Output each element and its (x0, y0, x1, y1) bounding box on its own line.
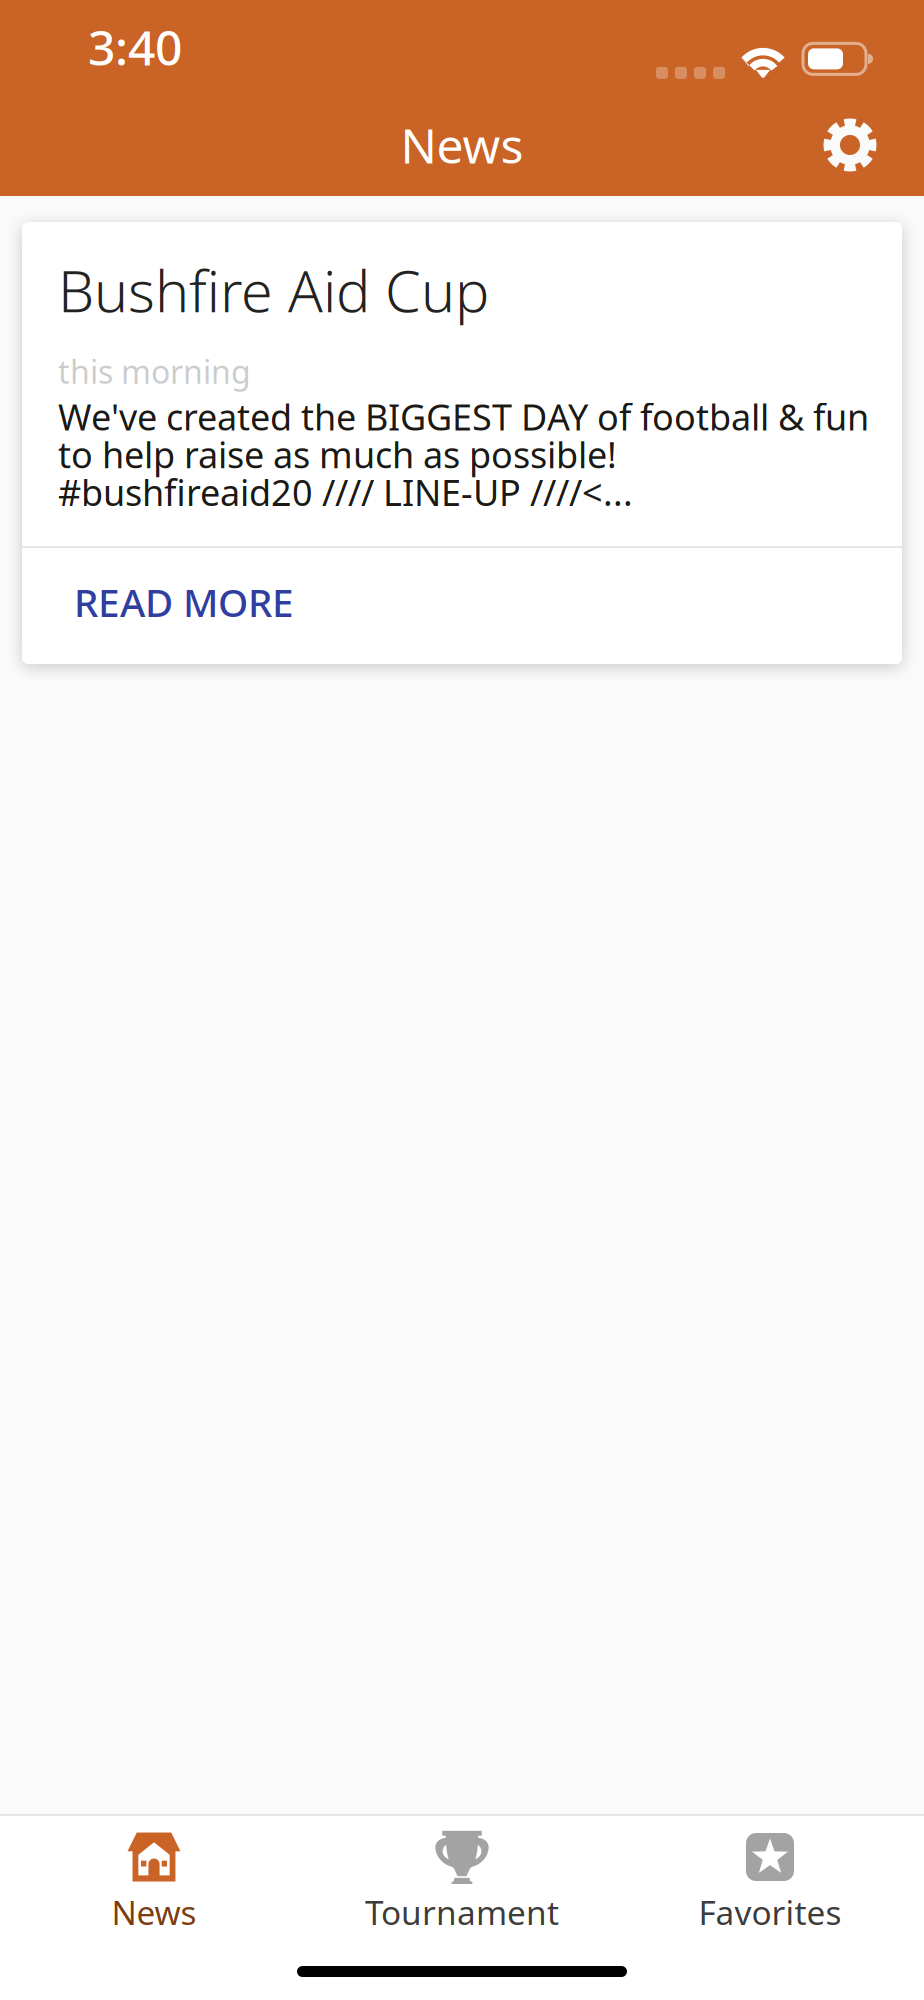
button[interactable]: Favorites (616, 1816, 924, 1940)
staticText: Favorites (698, 1890, 841, 1934)
staticText: 3:40 (88, 15, 182, 79)
staticText: Bushfire Aid Cup (58, 252, 489, 328)
button[interactable]: Settings (804, 99, 896, 191)
staticText: News (111, 1890, 196, 1934)
button[interactable]: News (0, 1816, 308, 1940)
button[interactable]: READ MORE (56, 558, 312, 654)
staticText: We've created the BIGGEST DAY of footbal… (58, 393, 869, 516)
button[interactable]: Tournament (308, 1816, 616, 1940)
staticText: Tournament (365, 1890, 559, 1934)
staticText: this morning (58, 350, 251, 393)
staticText: READ MORE (74, 576, 294, 628)
staticText: News (400, 113, 523, 177)
